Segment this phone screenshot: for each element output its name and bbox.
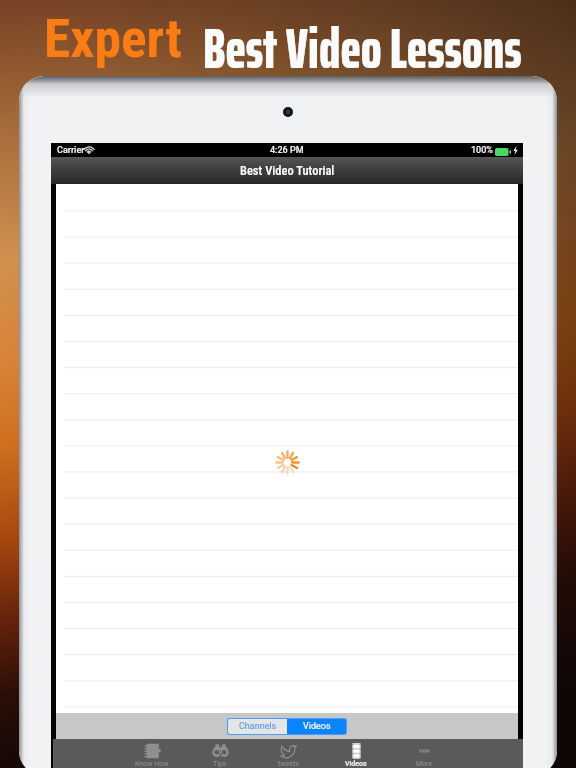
staticText: 4:26 PM xyxy=(270,145,304,156)
staticText: Tips xyxy=(213,760,227,768)
button[interactable]: Videos xyxy=(322,739,390,768)
button[interactable]: tweets xyxy=(254,739,322,768)
button[interactable]: Know How xyxy=(118,739,186,768)
staticText: More xyxy=(416,760,433,768)
staticText: Know How xyxy=(135,760,169,768)
button[interactable]: Videos xyxy=(287,719,346,734)
staticText: 100% xyxy=(471,145,493,156)
button[interactable]: More xyxy=(390,739,458,768)
staticText: Videos xyxy=(345,760,367,768)
staticText: Best Video Lessons xyxy=(203,6,522,82)
staticText: Channels xyxy=(239,721,277,732)
staticText: Expert xyxy=(44,7,182,70)
button[interactable]: Tips xyxy=(186,739,254,768)
staticText: Best Video Tutorial xyxy=(240,163,335,178)
staticText: tweets xyxy=(278,760,299,768)
staticText: Videos xyxy=(303,721,331,732)
button[interactable]: Channels xyxy=(228,719,287,734)
staticText: Carrier xyxy=(57,145,85,156)
